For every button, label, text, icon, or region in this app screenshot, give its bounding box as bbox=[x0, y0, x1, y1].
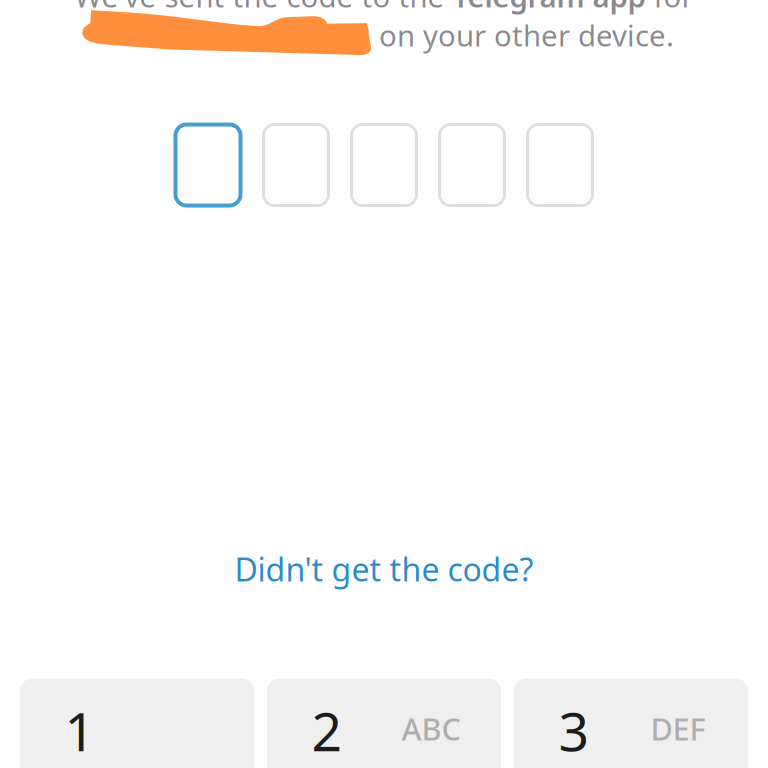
button[interactable]: Code digit 4 bbox=[439, 124, 504, 205]
staticText: +44 7700 900 123 on your other device. bbox=[126, 15, 674, 54]
button[interactable]: 1 bbox=[20, 678, 254, 768]
staticText: Didn't get the code? bbox=[234, 548, 533, 590]
button[interactable]: 3 bbox=[514, 678, 748, 768]
staticText: We've sent the code to the Telegram app … bbox=[74, 0, 693, 15]
staticText: 2 bbox=[311, 695, 342, 766]
button[interactable]: Code digit 1 bbox=[175, 124, 240, 205]
staticText: ABC bbox=[401, 708, 460, 749]
button[interactable]: Code digit 5 bbox=[527, 124, 592, 205]
button[interactable]: Didn't get the code? bbox=[234, 548, 533, 590]
button[interactable]: Code digit 3 bbox=[351, 124, 416, 205]
staticText: DEF bbox=[650, 708, 705, 749]
staticText: 1 bbox=[64, 695, 95, 766]
staticText: 3 bbox=[558, 695, 589, 766]
button[interactable]: 2 bbox=[267, 678, 501, 768]
button[interactable]: Code digit 2 bbox=[263, 124, 328, 205]
